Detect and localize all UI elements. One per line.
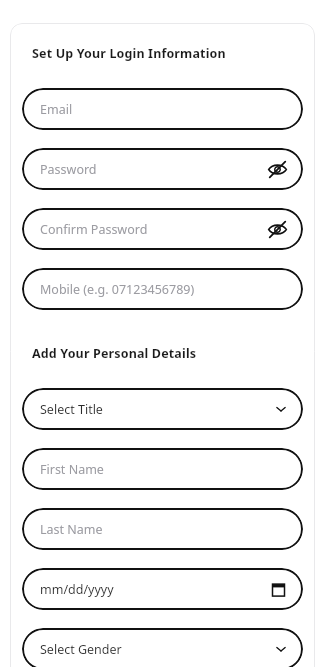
staticText: Set Up Your Login Information: [32, 45, 226, 62]
button[interactable]: mm/dd/yyyy: [22, 568, 303, 610]
button[interactable]: Password: [22, 148, 303, 190]
staticText: Last Name: [40, 521, 103, 538]
button[interactable]: First Name: [22, 448, 303, 490]
button[interactable]: Last Name: [22, 508, 303, 550]
button[interactable]: Confirm Password: [22, 208, 303, 250]
button[interactable]: Select Gender: [22, 628, 303, 667]
staticText: Mobile (e.g. 07123456789): [40, 281, 195, 298]
button[interactable]: Email: [22, 88, 303, 130]
button[interactable]: Show password: [267, 219, 288, 240]
staticText: Password: [40, 161, 97, 178]
staticText: mm/dd/yyyy: [40, 581, 114, 598]
staticText: Select Gender: [40, 641, 122, 658]
button[interactable]: Mobile (e.g. 07123456789): [22, 268, 303, 310]
staticText: Confirm Password: [40, 221, 148, 238]
button[interactable]: Open dropdown: [273, 401, 289, 417]
staticText: Add Your Personal Details: [32, 345, 197, 362]
button[interactable]: Pick date: [271, 582, 286, 597]
staticText: Select Title: [40, 401, 103, 418]
staticText: First Name: [40, 461, 104, 478]
button[interactable]: Select Title: [22, 388, 303, 430]
button[interactable]: Show password: [267, 159, 288, 180]
staticText: Email: [40, 101, 73, 118]
button[interactable]: Open dropdown: [273, 641, 289, 657]
